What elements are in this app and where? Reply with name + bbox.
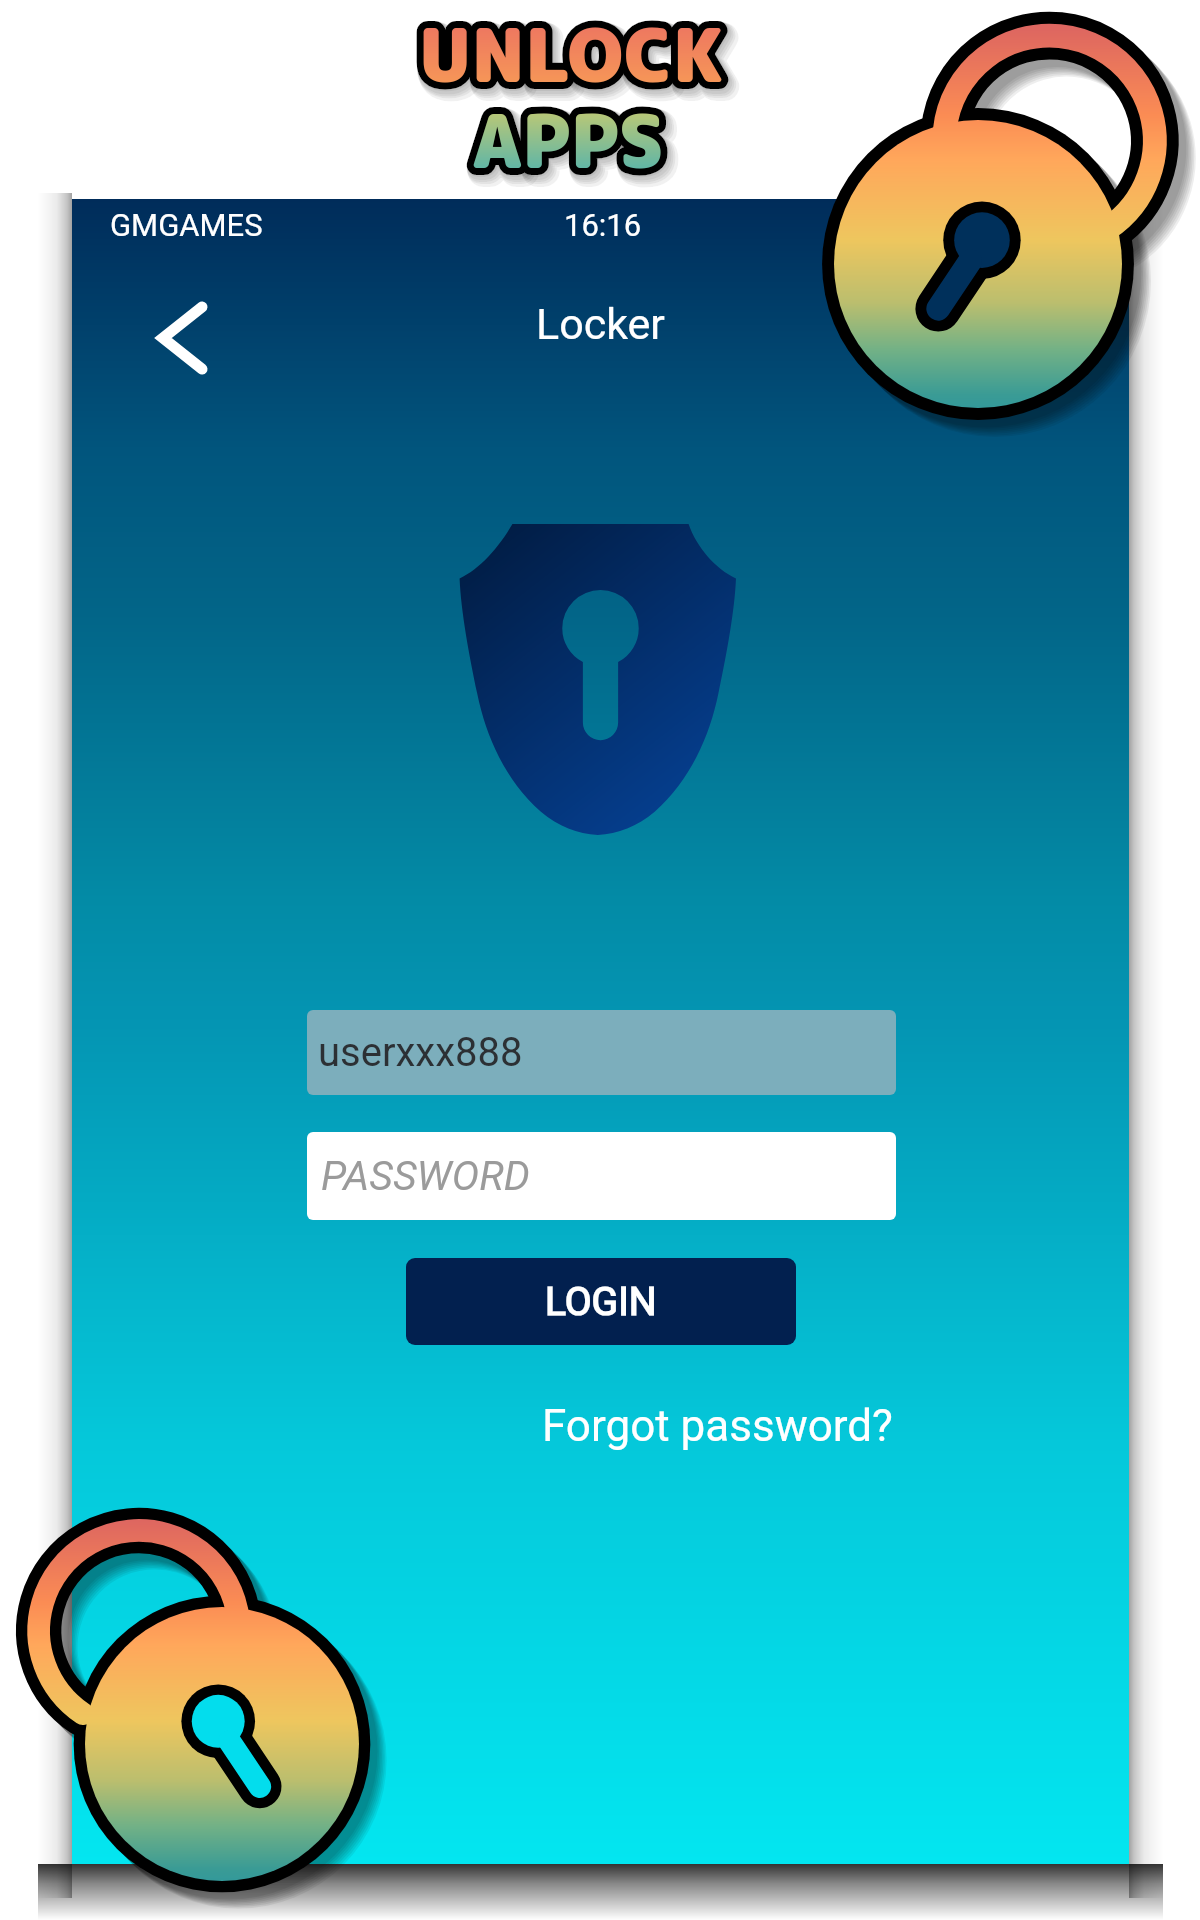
staticText: UNLOCK [423, 7, 727, 110]
button[interactable]: Back [138, 279, 234, 397]
staticText: UNLOCK [425, 9, 729, 112]
staticText: APPS [475, 92, 667, 195]
staticText: UNLOCK [420, 3, 724, 106]
staticText: userxxx888 [318, 1029, 523, 1076]
staticText: UNLOCK [422, 6, 726, 109]
staticText: Forgot password? [542, 1400, 893, 1452]
button[interactable]: userxxx888 [307, 1010, 896, 1095]
staticText: Locker [536, 299, 665, 349]
staticText: APPS [472, 88, 664, 191]
staticText: UNLOCK [421, 5, 725, 108]
button[interactable]: PASSWORD [307, 1132, 896, 1220]
staticText: APPS [473, 89, 665, 192]
staticText: UNLOCK [419, 2, 723, 105]
staticText: APPS [476, 93, 668, 196]
staticText: APPS [472, 88, 664, 191]
staticText: UNLOCK [419, 2, 723, 105]
staticText: APPS [478, 95, 670, 198]
button[interactable]: LOGIN [406, 1258, 796, 1345]
staticText: APPS [474, 91, 666, 194]
staticText: PASSWORD [321, 1152, 530, 1200]
staticText: 16:16 [564, 207, 642, 243]
staticText: LOGIN [545, 1279, 657, 1325]
staticText: GMGAMES [110, 207, 263, 243]
button[interactable]: Forgot password? [532, 1394, 903, 1458]
